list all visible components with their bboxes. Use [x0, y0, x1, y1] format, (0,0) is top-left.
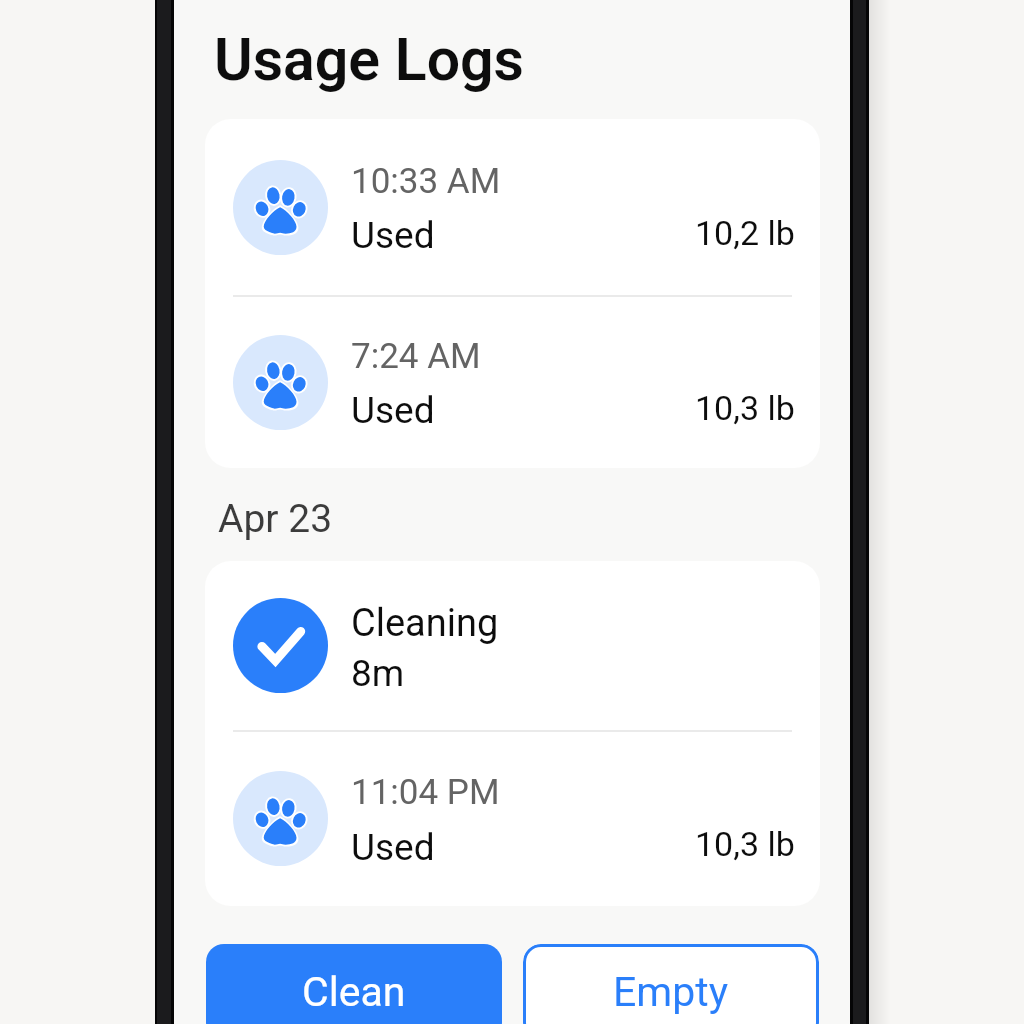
staticText: Used	[351, 826, 435, 869]
staticText: 10,3 lb	[695, 388, 795, 428]
staticText: 7:24 AM	[351, 336, 481, 377]
staticText: Used	[351, 214, 435, 257]
button[interactable]: Litter box used	[205, 119, 820, 295]
button[interactable]: Completed	[205, 561, 820, 730]
other: Completed	[233, 598, 328, 693]
staticText: Usage Logs	[214, 25, 524, 94]
other: Litter box used	[253, 355, 308, 410]
other: Litter box used	[253, 791, 308, 846]
button[interactable]: Litter box used	[205, 296, 820, 468]
staticText: 8m	[351, 652, 405, 695]
staticText: Apr 23	[218, 496, 333, 542]
other: Litter box used	[253, 180, 308, 235]
staticText: 11:04 PM	[351, 772, 500, 813]
button[interactable]: Empty	[523, 944, 819, 1024]
staticText: 10,2 lb	[695, 213, 795, 253]
staticText: Clean	[302, 968, 406, 1016]
staticText: Used	[351, 389, 435, 432]
staticText: Empty	[613, 968, 729, 1016]
staticText: Cleaning	[351, 601, 499, 646]
staticText: 10,3 lb	[695, 824, 795, 864]
button[interactable]: Clean	[206, 944, 502, 1024]
button[interactable]: Litter box used	[205, 731, 820, 906]
staticText: 10:33 AM	[351, 161, 501, 202]
